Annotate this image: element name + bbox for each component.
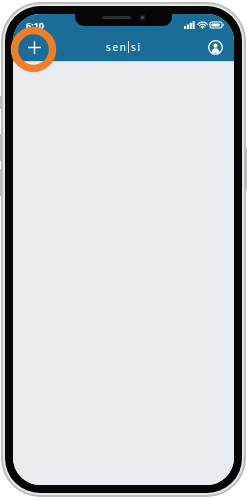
staticText: sen — [106, 40, 128, 54]
staticText: si — [131, 40, 142, 54]
staticText: 6:10 — [26, 19, 44, 31]
button[interactable]: Add — [21, 34, 47, 60]
button[interactable]: Account — [203, 35, 227, 59]
